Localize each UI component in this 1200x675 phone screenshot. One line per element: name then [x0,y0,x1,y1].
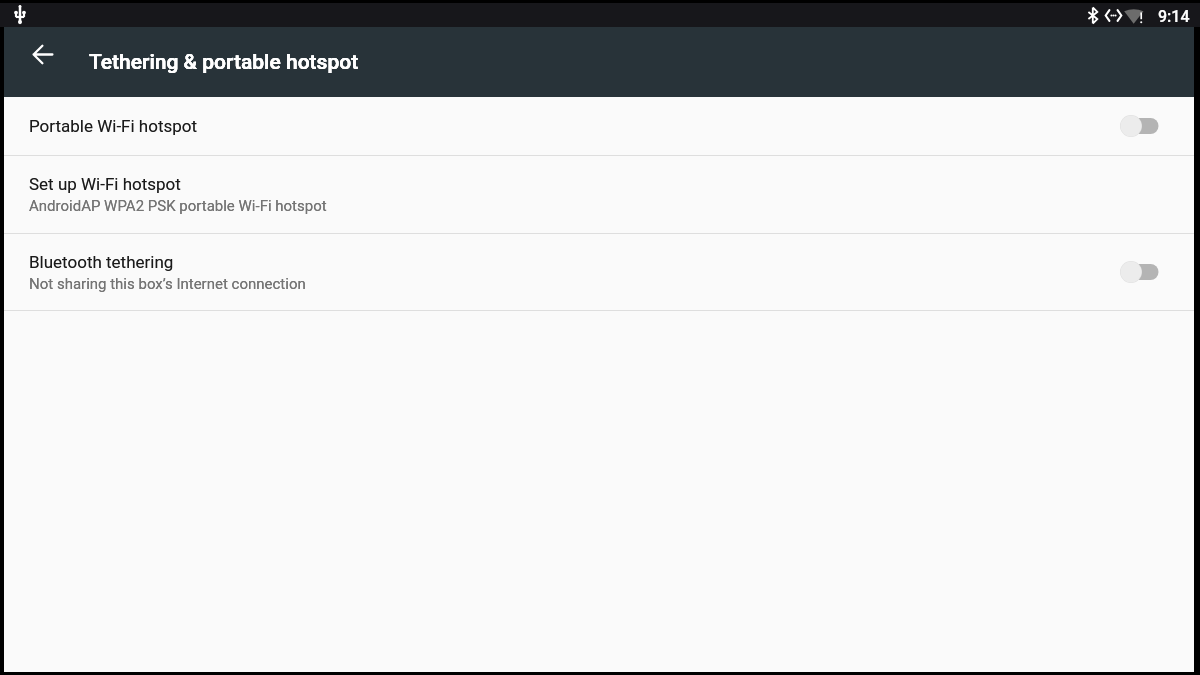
staticText: Portable Wi-Fi hotspot [29,116,198,136]
staticText: AndroidAP WPA2 PSK portable Wi-Fi hotspo… [29,197,327,215]
staticText: Set up Wi-Fi hotspot [29,174,181,194]
button[interactable]: Bluetooth tethering [4,234,1194,310]
staticText: Bluetooth tethering [29,252,174,272]
staticText: Bluetooth tethering [29,252,174,272]
staticText: 9:14 [1158,7,1190,26]
button[interactable]: Portable Wi-Fi hotspot switch [1114,104,1166,148]
staticText: AndroidAP WPA2 PSK portable Wi-Fi hotspo… [29,197,327,215]
staticText: Not sharing this box’s Internet connecti… [29,275,306,293]
staticText: Not sharing this box’s Internet connecti… [29,275,306,293]
button[interactable]: Portable Wi-Fi hotspot [4,97,1194,155]
staticText: Tethering & portable hotspot [89,50,359,75]
button[interactable]: Navigate up [19,30,67,78]
staticText: Portable Wi-Fi hotspot [29,116,198,136]
staticText: Set up Wi-Fi hotspot [29,174,181,194]
button[interactable]: Bluetooth tethering switch [1114,250,1166,294]
button[interactable]: Set up Wi-Fi hotspot [4,156,1194,233]
staticText: Tethering & portable hotspot [89,50,359,75]
